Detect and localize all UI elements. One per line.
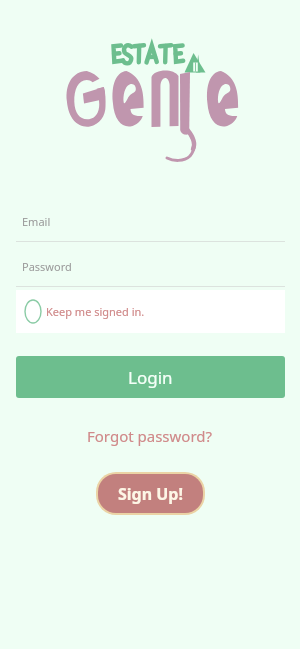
staticText: Sign Up! <box>118 483 183 505</box>
button[interactable]: Keep me signed in. <box>16 290 285 333</box>
staticText: Keep me signed in. <box>46 304 145 319</box>
button[interactable]: Forgot password? <box>81 424 219 448</box>
staticText: Login <box>128 366 173 389</box>
button[interactable]: Password <box>16 250 285 287</box>
staticText: Password <box>22 259 72 274</box>
button[interactable]: Email <box>16 205 285 242</box>
button[interactable]: Login <box>16 356 285 398</box>
button[interactable]: Sign Up! <box>98 474 203 513</box>
staticText: Email <box>22 214 51 229</box>
